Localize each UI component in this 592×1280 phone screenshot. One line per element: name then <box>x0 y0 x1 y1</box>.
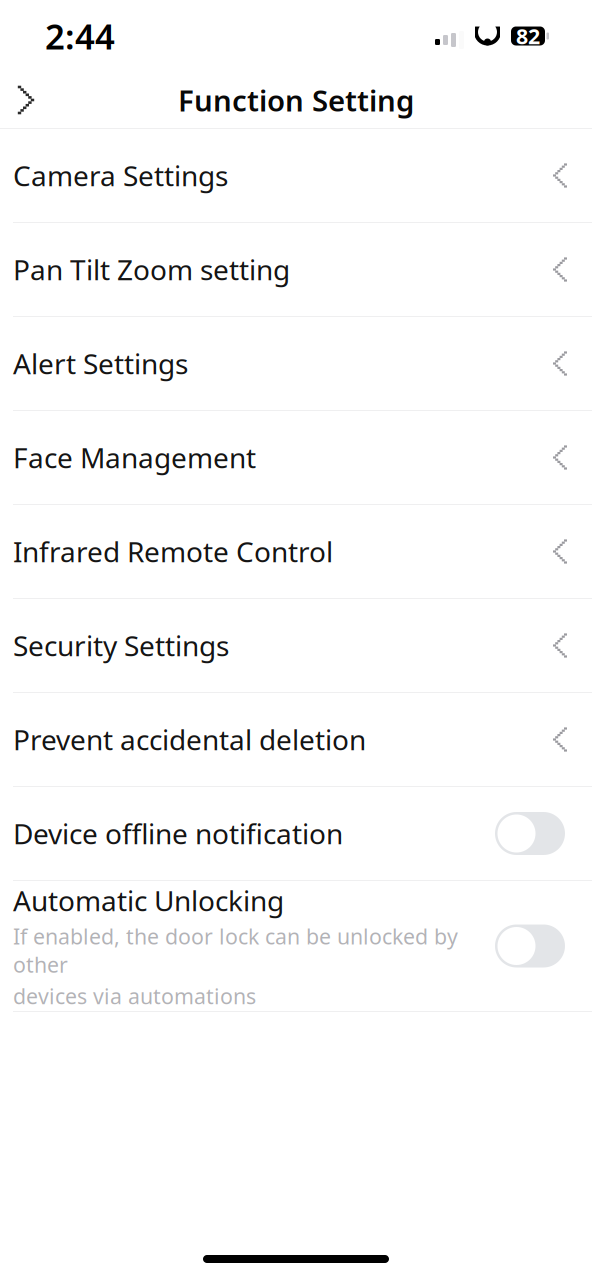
button[interactable]: Automatic Unlocking <box>495 924 565 967</box>
staticText: Function Setting <box>178 80 414 119</box>
button[interactable]: Infrared Remote Control <box>0 505 592 599</box>
button[interactable]: Pan Tilt Zoom setting <box>0 223 592 317</box>
staticText: 2:44 <box>45 13 115 59</box>
staticText: Alert Settings <box>13 345 188 382</box>
button[interactable]: Alert Settings <box>0 317 592 411</box>
staticText: Security Settings <box>13 627 229 664</box>
button[interactable]: Back <box>2 76 50 124</box>
staticText: Device offline notification <box>13 815 343 852</box>
staticText: Prevent accidental deletion <box>13 721 366 758</box>
button[interactable]: Security Settings <box>0 599 592 693</box>
staticText: Camera Settings <box>13 157 228 194</box>
button[interactable]: Device offline notification <box>495 812 565 855</box>
staticText: Automatic Unlocking <box>13 882 284 919</box>
button[interactable]: Face Management <box>0 411 592 505</box>
staticText: 82 <box>516 22 540 50</box>
staticText: If enabled, the door lock can be unlocke… <box>13 922 458 979</box>
staticText: devices via automations <box>13 982 256 1010</box>
button[interactable]: Prevent accidental deletion <box>0 693 592 787</box>
staticText: Infrared Remote Control <box>13 533 333 570</box>
staticText: Pan Tilt Zoom setting <box>13 251 290 288</box>
staticText: Face Management <box>13 439 256 476</box>
button[interactable]: Camera Settings <box>0 129 592 223</box>
